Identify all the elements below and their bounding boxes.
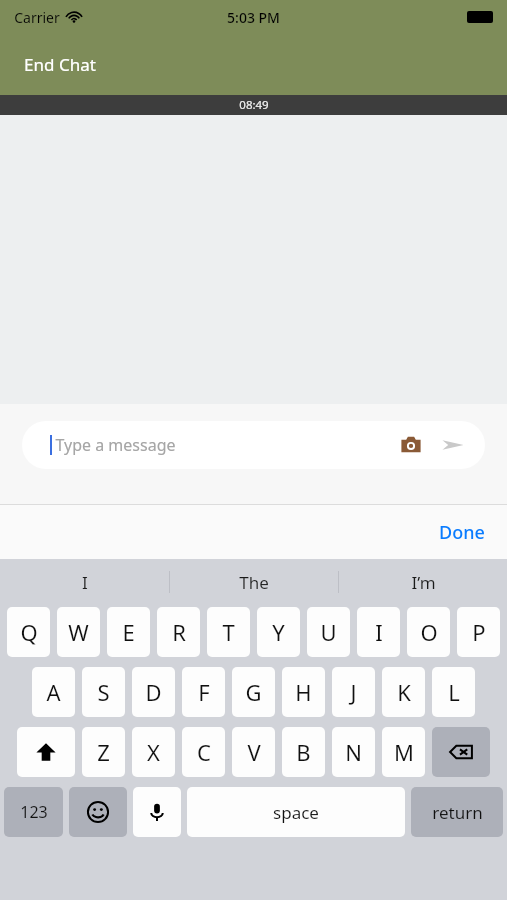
button[interactable]: Camera (393, 427, 429, 463)
staticText: 123 (20, 801, 48, 823)
staticText: P (472, 617, 486, 647)
button[interactable]: C (182, 727, 225, 777)
button[interactable]: Emoji (69, 787, 127, 837)
button[interactable]: space (187, 787, 405, 837)
button[interactable]: N (332, 727, 375, 777)
staticText: E (122, 617, 135, 647)
button[interactable]: V (232, 727, 275, 777)
button[interactable]: E (107, 607, 150, 657)
staticText: F (198, 677, 210, 707)
button[interactable]: X (132, 727, 175, 777)
button[interactable]: B (282, 727, 325, 777)
button[interactable]: Dictate (133, 787, 181, 837)
button[interactable]: Y (257, 607, 300, 657)
button[interactable]: U (307, 607, 350, 657)
button[interactable]: Done (429, 514, 495, 551)
button[interactable]: return (411, 787, 503, 837)
staticText: Carrier (14, 8, 60, 27)
staticText: J (350, 677, 357, 707)
staticText: O (420, 617, 438, 647)
button[interactable]: F (182, 667, 225, 717)
button[interactable]: The (170, 559, 338, 605)
button[interactable]: Backspace (432, 727, 490, 777)
staticText: H (295, 677, 312, 707)
staticText: Z (97, 737, 110, 767)
staticText: C (197, 737, 211, 767)
button[interactable]: Z (82, 727, 125, 777)
staticText: The (239, 571, 269, 594)
staticText: M (394, 737, 414, 767)
button[interactable]: W (57, 607, 100, 657)
staticText: R (172, 617, 186, 647)
staticText: G (245, 677, 262, 707)
button[interactable]: R (157, 607, 200, 657)
button[interactable]: End Chat (14, 47, 106, 82)
button[interactable]: Shift (17, 727, 75, 777)
staticText: return (432, 801, 483, 824)
button[interactable]: J (332, 667, 375, 717)
staticText: D (145, 677, 162, 707)
button[interactable]: A (32, 667, 75, 717)
button[interactable]: K (382, 667, 425, 717)
button[interactable]: I’m (339, 559, 507, 605)
button[interactable]: P (457, 607, 500, 657)
button[interactable]: O (407, 607, 450, 657)
staticText: W (68, 617, 89, 647)
button[interactable]: D (132, 667, 175, 717)
staticText: V (247, 737, 261, 767)
staticText: S (97, 677, 110, 707)
staticText: 5:03 PM (227, 8, 280, 27)
staticText: space (273, 801, 319, 824)
staticText: 08:49 (239, 97, 269, 113)
staticText: U (320, 617, 337, 647)
staticText: I (82, 571, 88, 594)
button[interactable]: Send (435, 427, 471, 463)
staticText: K (397, 677, 411, 707)
staticText: Done (439, 520, 485, 545)
staticText: B (296, 737, 311, 767)
button[interactable]: L (432, 667, 475, 717)
button[interactable]: H (282, 667, 325, 717)
staticText: I (375, 617, 383, 647)
staticText: A (46, 677, 61, 707)
button[interactable]: Q (7, 607, 50, 657)
staticText: End Chat (24, 53, 96, 76)
button[interactable]: M (382, 727, 425, 777)
staticText: I’m (411, 571, 436, 594)
button[interactable]: I (357, 607, 400, 657)
staticText: T (222, 617, 235, 647)
button[interactable]: Type a message (22, 421, 485, 469)
staticText: L (448, 677, 460, 707)
staticText: Type a message (55, 434, 176, 456)
button[interactable]: I (0, 559, 169, 605)
staticText: Q (20, 617, 38, 647)
button[interactable]: S (82, 667, 125, 717)
staticText: X (147, 737, 160, 767)
button[interactable]: T (207, 607, 250, 657)
button[interactable]: G (232, 667, 275, 717)
staticText: Y (272, 617, 285, 647)
staticText: N (345, 737, 362, 767)
button[interactable]: 123 (4, 787, 63, 837)
